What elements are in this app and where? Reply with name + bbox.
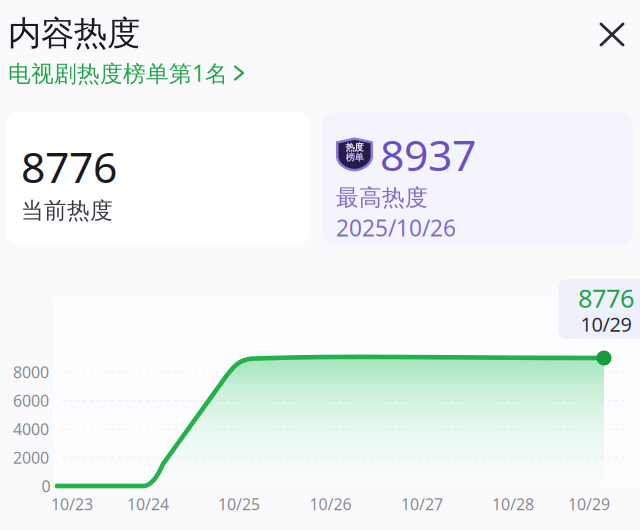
- staticText: 10/25: [218, 493, 260, 515]
- staticText: 最高热度: [336, 184, 428, 211]
- staticText: 0: [41, 475, 50, 497]
- staticText: 电视剧热度榜单第1名: [8, 58, 228, 88]
- staticText: 8776: [578, 281, 634, 315]
- staticText: 10/23: [51, 493, 93, 515]
- staticText: 热度: [345, 142, 363, 153]
- staticText: 10/29: [568, 493, 610, 515]
- staticText: 6000: [13, 390, 49, 411]
- staticText: 10/29: [580, 311, 631, 337]
- staticText: 2000: [13, 447, 49, 468]
- staticText: 当前热度: [21, 197, 113, 224]
- button[interactable]: Close: [590, 13, 634, 56]
- staticText: 10/26: [309, 493, 351, 515]
- staticText: 8776: [21, 138, 117, 195]
- staticText: 10/27: [401, 493, 443, 515]
- staticText: 2025/10/26: [336, 212, 456, 243]
- staticText: 8000: [13, 361, 49, 383]
- button[interactable]: 电视剧热度榜单第1名: [8, 58, 246, 88]
- staticText: 8937: [380, 126, 476, 183]
- staticText: 10/28: [492, 493, 534, 515]
- staticText: 10/24: [127, 493, 169, 515]
- staticText: 4000: [13, 418, 49, 440]
- staticText: 榜单: [345, 152, 363, 163]
- staticText: 内容热度: [8, 13, 140, 54]
